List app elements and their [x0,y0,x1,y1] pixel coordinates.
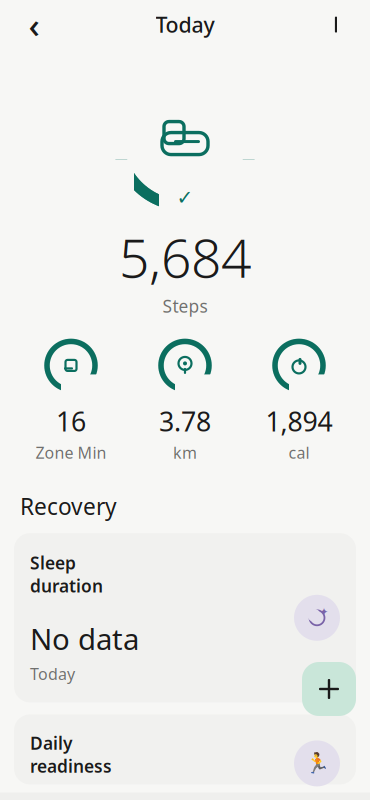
staticText: ✦ [319,606,328,618]
staticText: Daily readiness [30,731,112,777]
staticText: Today [30,663,75,684]
button[interactable]: Back [14,8,54,42]
staticText: 5,684 [119,222,251,292]
staticText: 3.78 [159,403,211,439]
staticText: 1,894 [265,403,332,439]
staticText: Today [155,10,214,39]
staticText: Zone Min [35,442,106,463]
button[interactable]: Edit [316,8,356,42]
staticText: 16 [56,403,86,439]
staticText: Steps [162,294,207,317]
button[interactable]: Add [302,662,356,716]
button[interactable]: Sleep duration [14,533,356,702]
staticText: 🏃 [304,752,329,775]
button[interactable]: Daily readiness [14,714,356,784]
staticText: Recovery [20,491,117,521]
staticText: ‹ [28,2,39,48]
staticText: km [173,442,197,463]
staticText: ✓ [176,186,193,209]
staticText: No data [30,619,139,658]
staticText: Sleep duration [30,551,103,597]
staticText: cal [288,442,309,463]
